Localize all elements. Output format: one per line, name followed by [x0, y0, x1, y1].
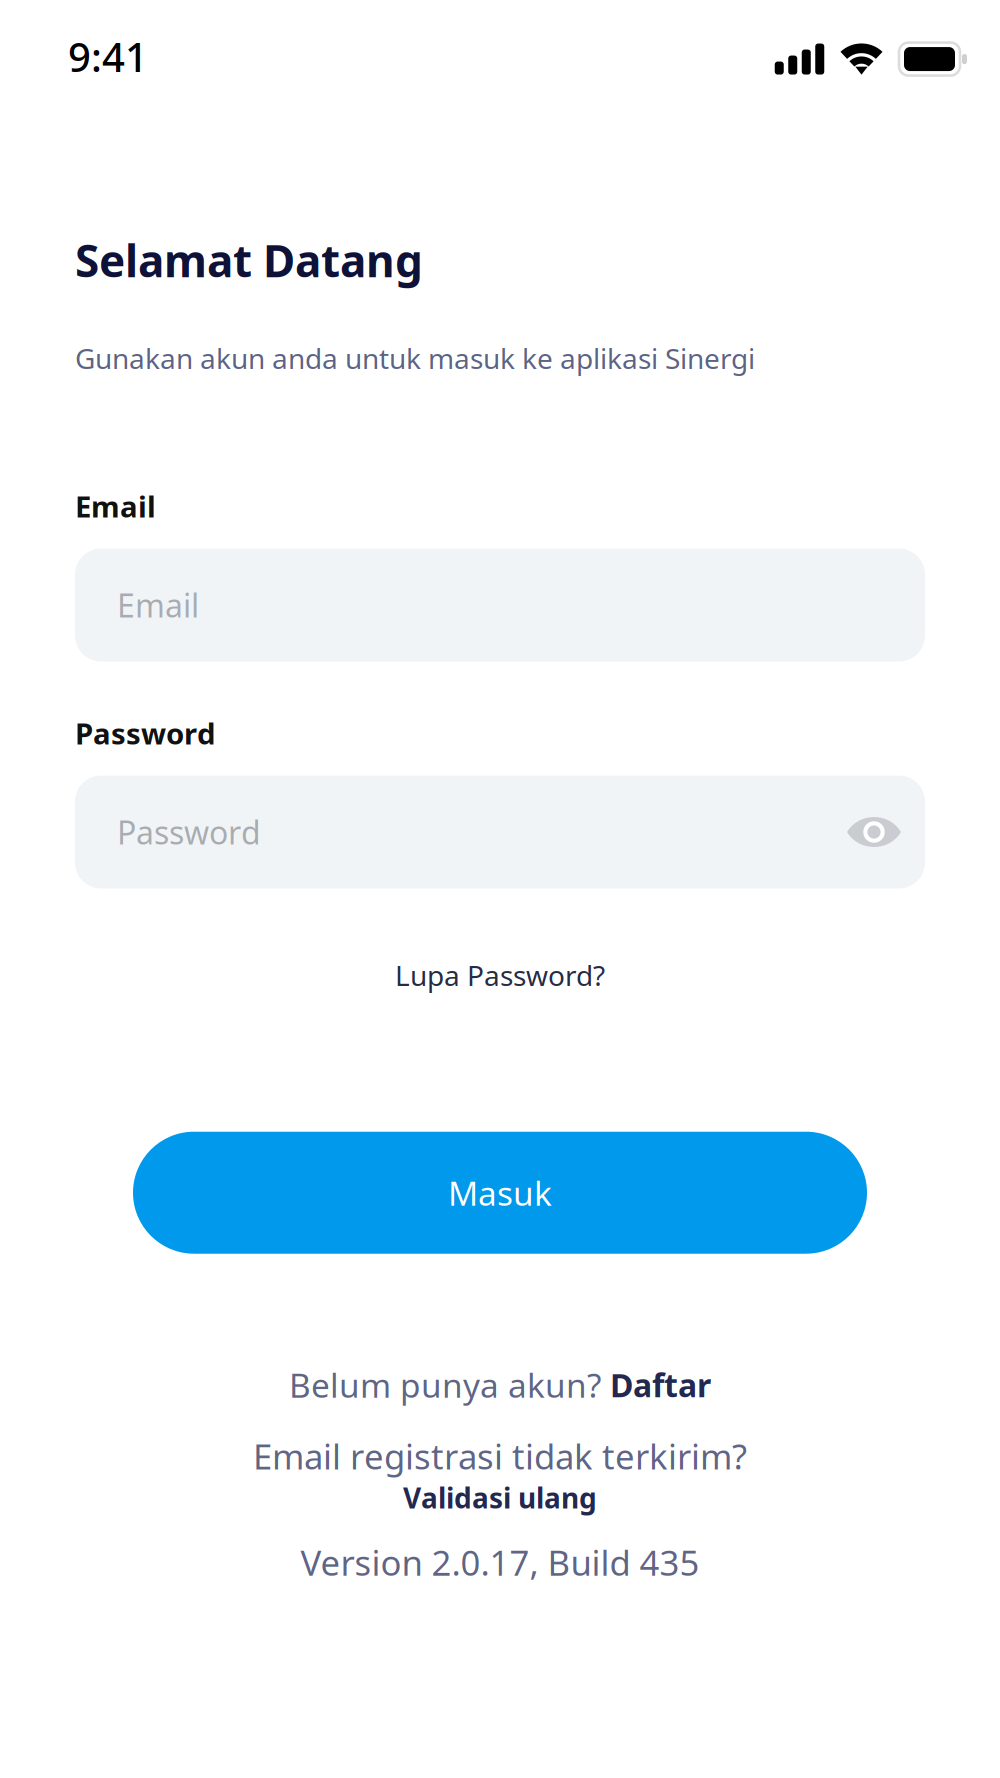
staticText: Lupa Password?: [395, 956, 605, 994]
staticText: Selamat Datang: [75, 231, 423, 289]
button[interactable]: Show password: [846, 813, 902, 851]
staticText: Password: [75, 714, 216, 753]
staticText: Daftar: [610, 1364, 711, 1406]
staticText: Validasi ulang: [403, 1479, 597, 1516]
staticText: Email: [75, 487, 156, 526]
button[interactable]: Email registrasi tidak terkirim?: [253, 1433, 747, 1516]
staticText: Password: [117, 811, 261, 853]
button[interactable]: Belum punya akun?: [289, 1357, 711, 1413]
staticText: 9:41: [68, 30, 148, 83]
button[interactable]: Lupa Password?: [371, 946, 629, 1004]
staticText: Version 2.0.17, Build 435: [300, 1539, 699, 1585]
staticText: Email: [117, 584, 199, 626]
staticText: Gunakan akun anda untuk masuk ke aplikas…: [75, 339, 755, 377]
staticText: Masuk: [448, 1171, 552, 1215]
button[interactable]: Masuk: [133, 1132, 867, 1254]
staticText: Belum punya akun?: [289, 1363, 610, 1407]
staticText: Email registrasi tidak terkirim?: [253, 1433, 747, 1479]
